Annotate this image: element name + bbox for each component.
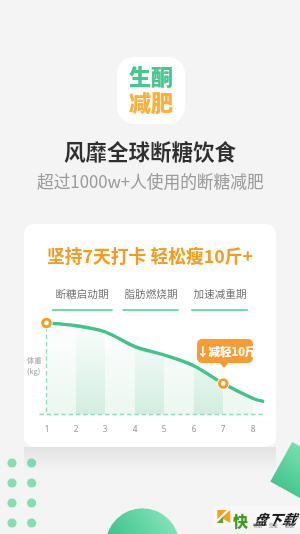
button[interactable]: App logo [117, 57, 185, 124]
staticText: 快 [233, 510, 249, 531]
staticText: 7 [215, 423, 231, 434]
staticText: 5 [156, 423, 172, 434]
staticText: 3 [97, 423, 113, 434]
staticText: 2 [68, 423, 84, 434]
button[interactable]: 加速减重期 [186, 286, 254, 301]
staticText: 8 [245, 423, 261, 434]
staticText: 体重 [27, 355, 42, 366]
staticText: 6 [186, 423, 202, 434]
staticText: 风靡全球断糖饮食 [64, 135, 237, 166]
staticText: 导航 · 完全 · 高速 [253, 522, 294, 529]
button[interactable]: ↓减轻10斤 [197, 339, 253, 363]
staticText: (kg) [27, 366, 41, 377]
staticText: 1 [39, 423, 55, 434]
button[interactable]: 断糖启动期 [48, 286, 116, 301]
staticText: 坚持7天打卡 轻松瘦10斤+ [24, 242, 276, 268]
staticText: 超过1000w+人使用的断糖减肥 [37, 169, 264, 193]
staticText: 脂肪燃烧期 [117, 286, 185, 301]
staticText: 断糖启动期 [48, 286, 116, 301]
button[interactable]: 脂肪燃烧期 [117, 286, 185, 301]
staticText: 加速减重期 [186, 286, 254, 301]
staticText: 减肥 [129, 85, 174, 117]
staticText: 4 [127, 423, 143, 434]
staticText: 盘下载 [253, 509, 296, 530]
staticText: 生酮 [129, 59, 174, 91]
staticText: ↓减轻10斤 [197, 343, 253, 360]
